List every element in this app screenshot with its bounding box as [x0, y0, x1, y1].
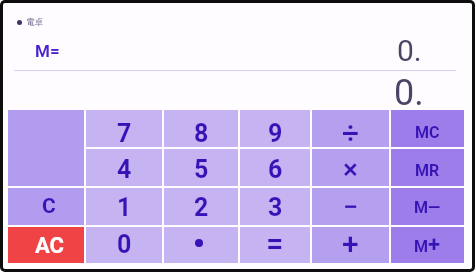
staticText: M+ [414, 232, 441, 258]
staticText: 2 [194, 193, 209, 222]
staticText: AC [35, 233, 64, 259]
staticText: + [342, 226, 359, 261]
button[interactable]: 3 [240, 188, 310, 225]
staticText: 7 [117, 119, 132, 148]
button[interactable]: MC [391, 110, 464, 147]
button[interactable]: + [312, 227, 389, 263]
staticText: = [266, 225, 284, 261]
staticText: 0 [117, 230, 132, 259]
button[interactable]: 8 [164, 110, 238, 147]
staticText: 電卓 [26, 17, 43, 28]
button[interactable]: MR [391, 149, 464, 186]
button[interactable]: 5 [164, 149, 238, 186]
button[interactable]: × [312, 149, 389, 186]
button[interactable]: − [312, 188, 389, 225]
staticText: M= [35, 41, 60, 61]
button[interactable] [164, 227, 238, 263]
staticText: MR [415, 161, 440, 180]
button[interactable]: 2 [164, 188, 238, 225]
button[interactable]: C [8, 188, 84, 225]
button[interactable]: 7 [86, 110, 162, 147]
staticText: − [343, 191, 359, 223]
staticText: M— [414, 198, 441, 217]
button[interactable]: ÷ [312, 110, 389, 147]
staticText: MC [415, 123, 440, 142]
button[interactable]: M— [391, 188, 464, 225]
staticText: 4 [117, 155, 132, 184]
staticText: 6 [268, 155, 283, 184]
staticText: 5 [194, 155, 209, 184]
staticText: ÷ [342, 115, 360, 150]
button[interactable]: 0 [86, 227, 162, 263]
staticText: 9 [268, 119, 283, 148]
staticText: 1 [117, 193, 132, 222]
button[interactable]: 4 [86, 149, 162, 186]
staticText: × [343, 153, 358, 186]
staticText: 0. [397, 33, 422, 68]
staticText: 0. [394, 72, 424, 114]
staticText: C [42, 194, 56, 219]
button[interactable]: 9 [240, 110, 310, 147]
button[interactable]: M+ [391, 227, 464, 263]
button[interactable]: 1 [86, 188, 162, 225]
button[interactable]: = [240, 227, 310, 263]
button[interactable]: AC [8, 227, 84, 263]
button[interactable]: 6 [240, 149, 310, 186]
staticText: 3 [268, 193, 283, 222]
staticText: 8 [194, 119, 209, 148]
